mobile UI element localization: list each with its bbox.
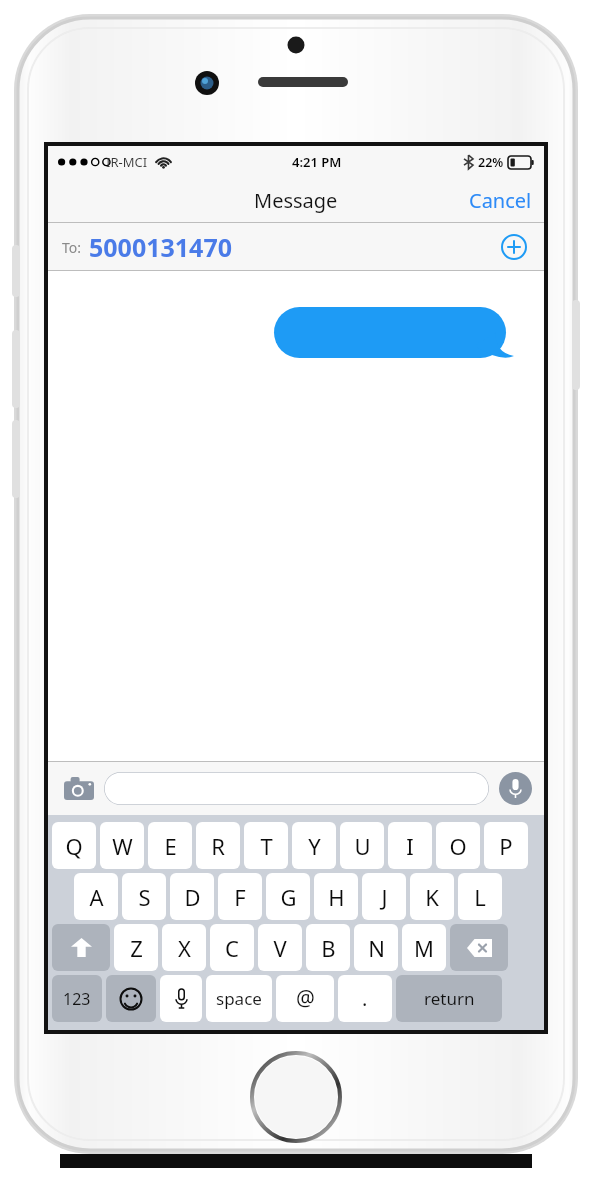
button[interactable]: C [210, 924, 254, 971]
button[interactable]: Cancel [457, 179, 544, 222]
button[interactable]: Dictation [499, 772, 532, 805]
staticText: O [449, 831, 467, 861]
staticText: E [164, 831, 177, 861]
button[interactable]: Y [292, 822, 336, 869]
button[interactable]: . [338, 975, 392, 1022]
button[interactable]: P [484, 822, 528, 869]
staticText: 22% [478, 154, 504, 171]
button[interactable]: Emoji [106, 975, 156, 1022]
button[interactable]: E [148, 822, 192, 869]
button[interactable]: Add contact [496, 229, 532, 265]
button[interactable]: U [340, 822, 384, 869]
button[interactable]: R [196, 822, 240, 869]
button[interactable]: V [258, 924, 302, 971]
staticText: B [321, 933, 336, 963]
button[interactable]: J [362, 873, 406, 920]
button[interactable] [52, 924, 110, 971]
staticText: A [89, 882, 104, 912]
staticText: 4:21 PM [292, 153, 342, 171]
staticText: Message [254, 187, 338, 214]
button[interactable]: Q [52, 822, 96, 869]
staticText: K [425, 882, 439, 912]
button[interactable]: @ [276, 975, 334, 1022]
button[interactable]: A [74, 873, 118, 920]
button[interactable]: Z [114, 924, 158, 971]
button[interactable]: Camera [60, 769, 98, 807]
staticText: To: [62, 238, 82, 257]
staticText: J [381, 882, 388, 912]
staticText: P [499, 831, 513, 861]
staticText: R [211, 831, 225, 861]
button[interactable]: L [458, 873, 502, 920]
button[interactable]: F [218, 873, 262, 920]
button[interactable]: O [436, 822, 480, 869]
staticText: . [362, 985, 368, 1012]
button[interactable]: space [206, 975, 272, 1022]
staticText: X [178, 933, 191, 963]
staticText: T [260, 831, 273, 861]
button[interactable]: 123 [52, 975, 102, 1022]
staticText: N [368, 933, 385, 963]
staticText: I [406, 831, 414, 861]
staticText: Y [308, 831, 321, 861]
staticText: 5000131470 [89, 230, 233, 264]
staticText: V [273, 933, 287, 963]
button[interactable]: D [170, 873, 214, 920]
staticText: 123 [63, 988, 91, 1010]
button[interactable]: Backspace [450, 924, 508, 971]
staticText: D [184, 882, 201, 912]
staticText: L [474, 882, 486, 912]
staticText: space [216, 987, 262, 1010]
staticText: IR-MCI [106, 153, 148, 171]
button[interactable]: T [244, 822, 288, 869]
staticText: U [354, 831, 371, 861]
staticText: H [328, 882, 345, 912]
button[interactable]: H [314, 873, 358, 920]
staticText: M [414, 933, 434, 963]
staticText: Q [65, 831, 83, 861]
staticText: F [234, 882, 246, 912]
staticText: G [280, 882, 297, 912]
staticText: Z [130, 933, 143, 963]
button[interactable]: B [306, 924, 350, 971]
button[interactable]: K [410, 873, 454, 920]
button[interactable]: M [402, 924, 446, 971]
button[interactable] [104, 772, 489, 805]
staticText: return [424, 987, 475, 1010]
staticText: Cancel [469, 187, 532, 214]
staticText: C [225, 933, 239, 963]
button[interactable]: G [266, 873, 310, 920]
button[interactable]: Dictation [160, 975, 202, 1022]
staticText: @ [296, 984, 315, 1013]
button[interactable]: W [100, 822, 144, 869]
button[interactable]: S [122, 873, 166, 920]
button[interactable]: I [388, 822, 432, 869]
button[interactable]: X [162, 924, 206, 971]
button[interactable]: N [354, 924, 398, 971]
staticText: W [112, 831, 133, 861]
button[interactable]: return [396, 975, 502, 1022]
staticText: S [138, 882, 151, 912]
